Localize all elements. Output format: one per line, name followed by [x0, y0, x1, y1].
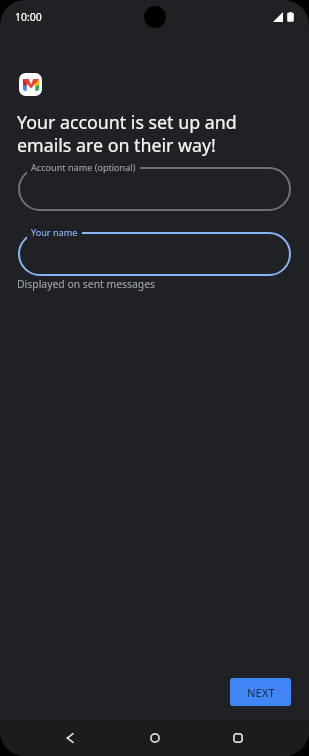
staticText: Displayed on sent messages — [17, 277, 156, 291]
button[interactable]: NEXT — [230, 678, 291, 706]
staticText: Account name (optional) — [31, 161, 136, 173]
staticText: NEXT — [247, 685, 275, 700]
button[interactable] — [18, 232, 291, 276]
button[interactable]: Home — [137, 720, 173, 756]
staticText: 10:00 — [15, 10, 42, 24]
button[interactable] — [18, 167, 291, 211]
staticText: Your name — [31, 226, 78, 238]
staticText: Your account is set up and emails are on… — [17, 110, 249, 158]
button[interactable]: Recent apps — [220, 720, 256, 756]
button[interactable]: Back — [52, 720, 88, 756]
